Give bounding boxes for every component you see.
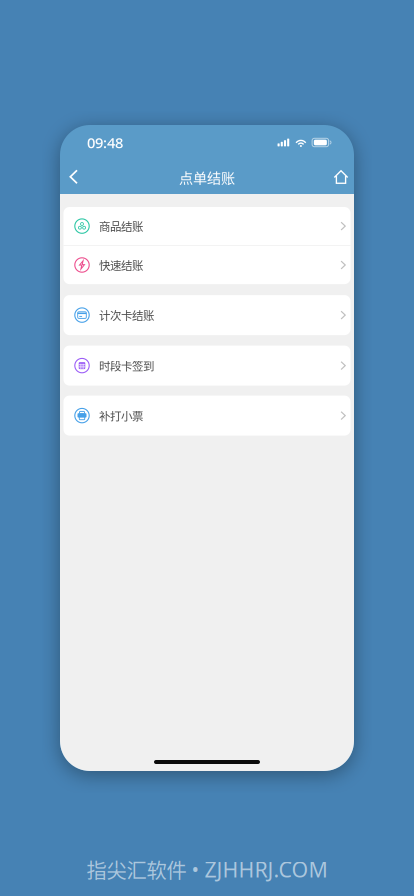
staticText: 商品结账 (99, 218, 143, 234)
button[interactable]: Back (61, 160, 87, 194)
button[interactable]: Home (328, 160, 354, 194)
staticText: 计次卡结账 (99, 307, 154, 323)
button[interactable]: 计次卡结账 (63, 295, 350, 335)
button[interactable]: 商品结账 (63, 207, 350, 245)
staticText: 快速结账 (99, 257, 143, 273)
staticText: ZJHHRJ.COM (204, 855, 327, 883)
staticText: 点单结账 (179, 167, 235, 187)
staticText: • (186, 856, 204, 883)
button[interactable]: 补打小票 (63, 396, 350, 436)
button[interactable]: 快速结账 (63, 246, 350, 284)
button[interactable]: 时段卡签到 (63, 346, 350, 386)
staticText: 指尖汇软件 (86, 855, 186, 884)
staticText: 时段卡签到 (99, 357, 154, 374)
staticText: 09:48 (87, 133, 123, 152)
staticText: 补打小票 (99, 407, 143, 424)
